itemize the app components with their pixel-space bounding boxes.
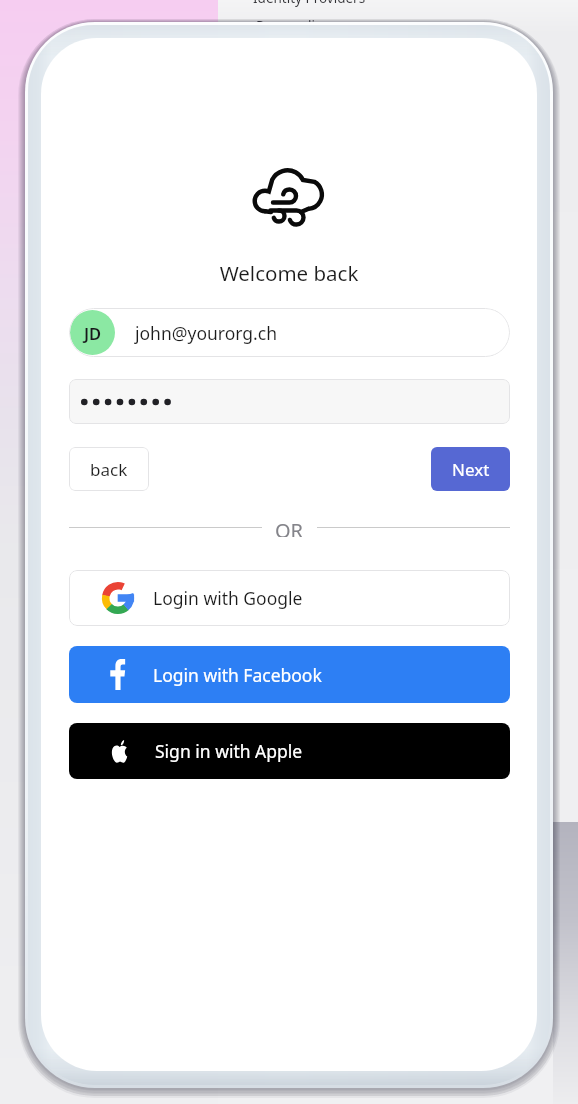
staticText: john@yourorg.ch: [135, 321, 277, 345]
staticText: back: [90, 458, 128, 481]
button[interactable]: JD: [69, 308, 510, 357]
button[interactable]: Sign in with Apple: [69, 723, 510, 779]
button[interactable]: Next: [431, 447, 510, 491]
staticText: JD: [84, 322, 102, 344]
staticText: Sign in with Apple: [155, 739, 303, 763]
button[interactable]: Login with Facebook: [69, 646, 510, 703]
button[interactable]: [69, 379, 510, 424]
button[interactable]: back: [69, 447, 149, 491]
staticText: Login with Facebook: [153, 663, 322, 687]
staticText: Identity Providers: [253, 0, 366, 7]
staticText: Welcome back: [41, 259, 537, 287]
staticText: Login with Google: [153, 586, 303, 610]
staticText: OR: [275, 517, 304, 537]
button[interactable]: Login with Google: [69, 570, 510, 626]
staticText: Next: [452, 458, 490, 481]
staticText: Personalize: [256, 17, 329, 35]
